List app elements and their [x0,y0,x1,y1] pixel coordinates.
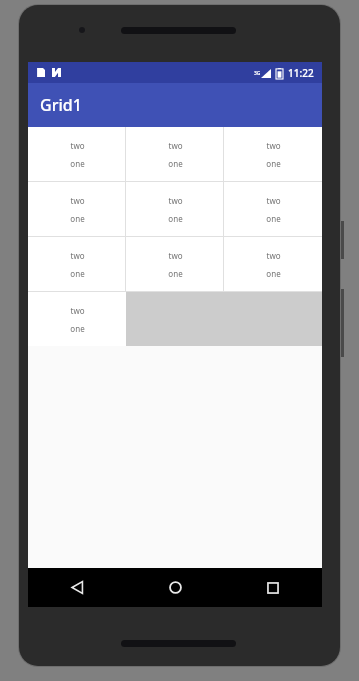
staticText: one [70,213,85,224]
staticText: two [70,250,85,261]
staticText: two [168,250,183,261]
staticText: two [70,305,85,316]
staticText: one [266,213,281,224]
staticText: one [70,158,85,169]
button[interactable]: two [224,127,322,181]
staticText: one [168,268,183,279]
staticText: one [70,268,85,279]
staticText: two [266,195,281,206]
staticText: one [266,268,281,279]
button[interactable]: two [28,292,126,346]
button[interactable]: two [126,182,224,236]
staticText: two [70,195,85,206]
staticText: two [70,140,85,151]
button[interactable]: Back [28,568,126,607]
staticText: one [168,158,183,169]
button[interactable]: two [126,127,224,181]
staticText: two [266,140,281,151]
staticText: 3G [254,70,261,77]
staticText: one [70,323,85,334]
button[interactable]: two [28,237,126,291]
button[interactable]: two [224,182,322,236]
button[interactable]: two [28,182,126,236]
button[interactable]: Recent apps [224,568,322,607]
staticText: two [168,195,183,206]
staticText: Grid1 [40,94,82,116]
button[interactable]: two [28,127,126,181]
staticText: two [266,250,281,261]
button[interactable]: Grid1 [28,83,322,127]
button[interactable]: two [126,237,224,291]
staticText: 11:22 [288,66,314,80]
button[interactable]: Home [126,568,224,607]
staticText: two [168,140,183,151]
staticText: one [168,213,183,224]
button[interactable]: two [224,237,322,291]
staticText: one [266,158,281,169]
